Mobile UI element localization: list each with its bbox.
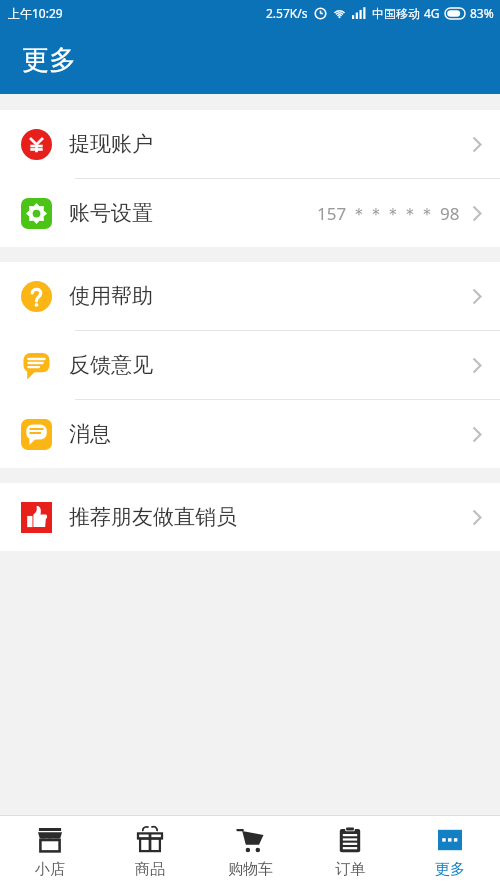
staticText: 推荐朋友做直销员 [69, 504, 237, 530]
button[interactable]: 反馈意见 [0, 331, 500, 400]
staticText: 小店 [35, 860, 65, 879]
staticText: 4G [424, 5, 440, 21]
staticText: 上午10:29 [8, 5, 63, 21]
staticText: 157 ＊＊＊＊＊ 98 [317, 202, 460, 225]
staticText: 使用帮助 [69, 283, 153, 309]
staticText: 商品 [135, 860, 165, 879]
staticText: 账号设置 [69, 200, 153, 226]
staticText: 反馈意见 [69, 352, 153, 378]
button[interactable]: 消息 [0, 400, 500, 468]
button[interactable]: 购物车 [200, 816, 300, 888]
staticText: 购物车 [228, 860, 273, 879]
button[interactable]: 提现账户 [0, 110, 500, 179]
button[interactable]: 更多 [400, 816, 500, 888]
button[interactable]: 订单 [300, 816, 400, 888]
staticText: 订单 [335, 860, 365, 879]
button[interactable]: 推荐朋友做直销员 [0, 483, 500, 551]
staticText: 提现账户 [69, 131, 153, 157]
button[interactable]: 小店 [0, 816, 100, 888]
staticText: 中国移动 [372, 6, 420, 21]
staticText: 83% [470, 5, 494, 21]
staticText: 更多 [435, 860, 465, 879]
staticText: 更多 [22, 43, 76, 77]
button[interactable]: 使用帮助 [0, 262, 500, 331]
button[interactable]: 商品 [100, 816, 200, 888]
staticText: 消息 [69, 421, 111, 447]
button[interactable]: 账号设置 [0, 179, 500, 247]
staticText: 2.57K/s [266, 5, 308, 21]
